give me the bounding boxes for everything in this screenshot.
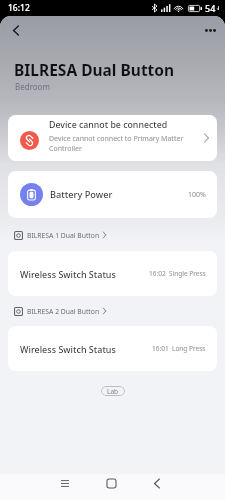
staticText: Long Press [172,344,206,353]
button[interactable]: Back [2,16,30,44]
staticText: Battery Power [50,188,188,201]
staticText: 16:12 [8,2,30,14]
staticText: 16:01 [152,344,169,353]
staticText: Device cannot be connected [49,119,168,131]
staticText: BILRESA 1 Dual Button [27,231,100,240]
staticText: Device cannot connect to Primary Matter … [49,134,200,154]
button[interactable]: Recent apps [53,471,77,495]
button[interactable]: BILRESA 1 Dual Button [14,230,106,240]
staticText: 16:02 [149,269,166,278]
staticText: BILRESA Dual Button [14,59,175,77]
staticText: Wireless Switch Status [20,268,149,280]
staticText: Wireless Switch Status [20,343,152,355]
button[interactable]: BILRESA 2 Dual Button [14,306,106,316]
button[interactable]: Home [99,471,123,495]
button[interactable]: Device cannot be connected [8,115,217,161]
staticText: Bedroom [15,81,50,91]
staticText: Single Press [169,269,206,278]
staticText: 54 [205,2,216,14]
staticText: 100% [188,190,206,200]
button[interactable]: Wireless Switch Status [8,251,217,296]
button[interactable]: More options [196,16,224,44]
button[interactable]: Lab [101,386,125,396]
button[interactable]: Wireless Switch Status [8,326,217,371]
staticText: Lab [107,387,119,396]
staticText: BILRESA 2 Dual Button [27,307,100,316]
button[interactable]: Back [145,471,169,495]
button[interactable]: Battery Power [8,171,217,218]
